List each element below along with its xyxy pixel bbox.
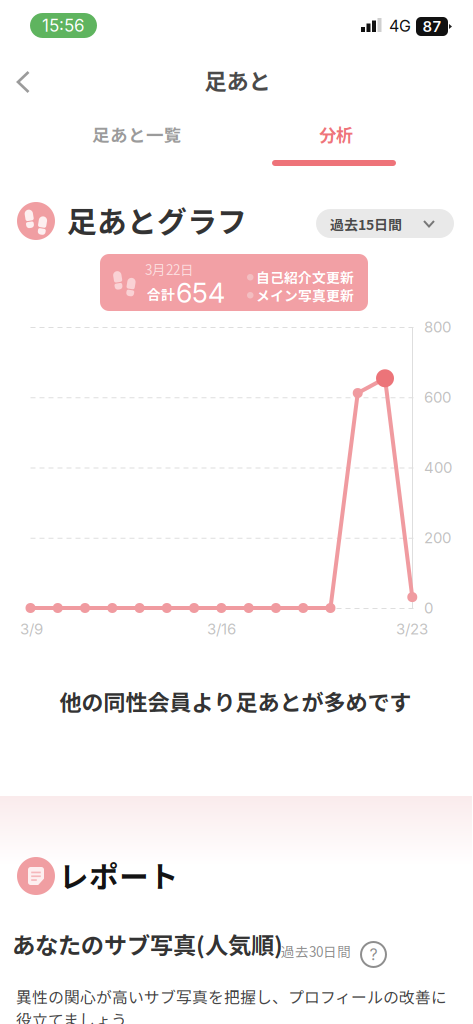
staticText: 足あと一覧 xyxy=(92,121,182,147)
staticText: ? xyxy=(369,945,377,964)
staticText: 過去30日間 xyxy=(281,941,351,961)
staticText: 分析 xyxy=(319,121,353,146)
staticText: 15:56 xyxy=(42,15,85,36)
staticText: 過去15日間 xyxy=(330,214,402,234)
staticText: 足あとグラフ xyxy=(67,198,247,241)
staticText: 654 xyxy=(176,277,225,309)
staticText: 4G xyxy=(389,16,411,36)
staticText: 600 xyxy=(424,388,451,406)
staticText: 0 xyxy=(424,599,433,617)
staticText: 800 xyxy=(424,318,451,336)
staticText: 3/23 xyxy=(396,620,428,638)
staticText: 他の同性会員より足あとが多めです xyxy=(59,685,411,717)
button[interactable]: Back xyxy=(6,60,50,104)
staticText: 異性の関心が高いサブ写真を把握し、プロフィールの改善に役立てましょう xyxy=(16,985,447,1024)
staticText: 自己紹介文更新 xyxy=(256,267,354,287)
staticText: 3月22日 xyxy=(145,259,194,279)
staticText: 3/16 xyxy=(207,620,236,638)
button[interactable]: Help xyxy=(361,942,386,967)
staticText: 足あと xyxy=(204,64,270,96)
staticText: 200 xyxy=(424,529,451,547)
staticText: 87 xyxy=(422,17,441,35)
button[interactable]: 過去15日間 xyxy=(316,209,454,238)
staticText: レポート xyxy=(59,854,179,896)
button[interactable]: 足あと一覧 xyxy=(19,110,255,158)
button[interactable]: 分析 xyxy=(254,111,414,161)
staticText: 合計 xyxy=(147,284,175,304)
staticText: 3/9 xyxy=(20,620,43,638)
staticText: メイン写真更新 xyxy=(256,285,354,305)
staticText: あなたのサブ写真(人気順) xyxy=(12,927,283,961)
staticText: 400 xyxy=(424,458,452,476)
